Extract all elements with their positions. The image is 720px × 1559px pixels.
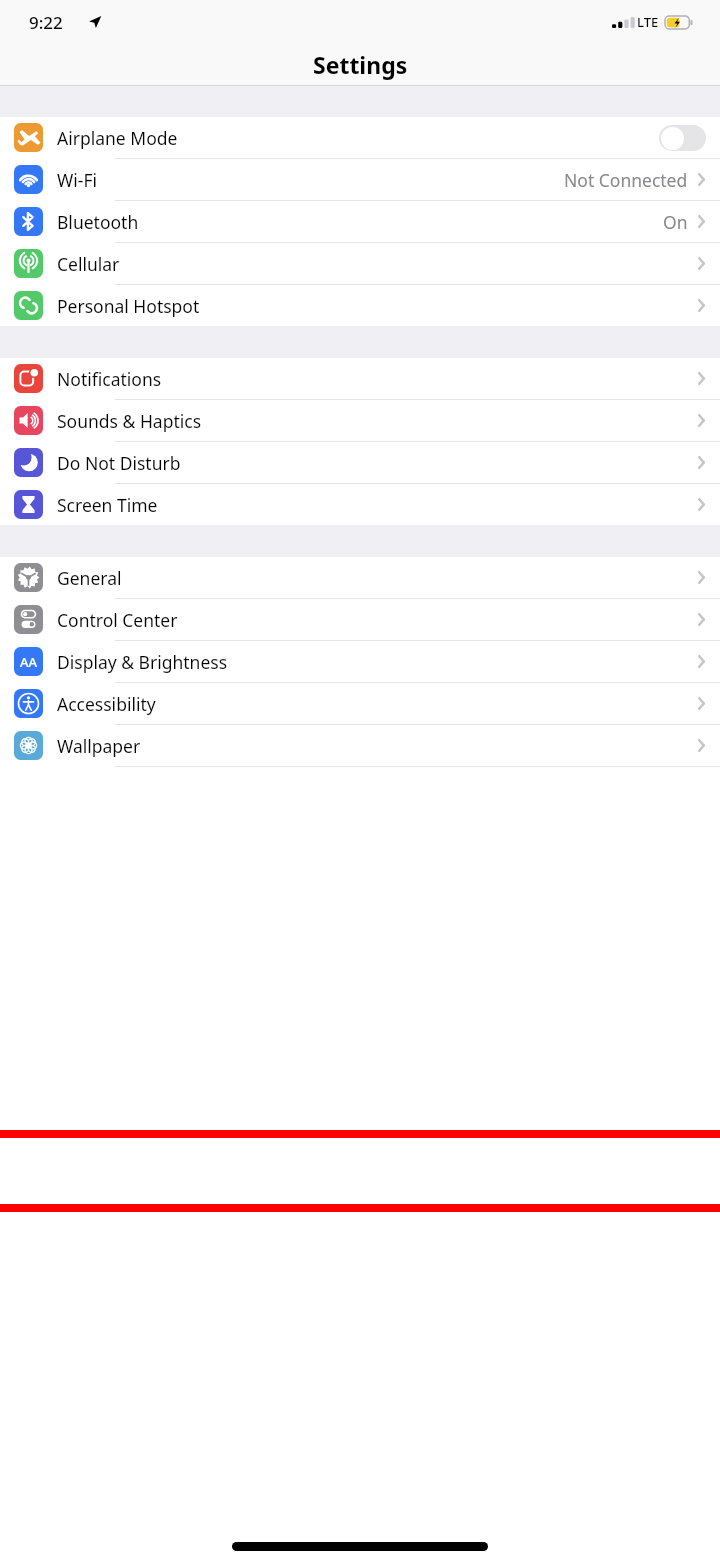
button[interactable]: Notifications xyxy=(0,358,720,399)
staticText: Settings xyxy=(313,49,408,80)
button[interactable]: Sounds & Haptics xyxy=(0,400,720,441)
button[interactable]: Control Center xyxy=(0,599,720,640)
button[interactable]: Wi-Fi xyxy=(0,159,720,200)
staticText: Sounds & Haptics xyxy=(57,409,202,433)
staticText: General xyxy=(57,566,122,590)
button[interactable]: Bluetooth xyxy=(0,201,720,242)
staticText: Cellular xyxy=(57,252,120,276)
button[interactable]: AA xyxy=(0,641,720,682)
staticText: Display & Brightness xyxy=(57,650,228,674)
staticText: Accessibility xyxy=(57,692,156,716)
staticText: On xyxy=(663,210,688,234)
button[interactable]: Screen Time xyxy=(0,484,720,525)
staticText: Notifications xyxy=(57,367,162,391)
staticText: Wallpaper xyxy=(57,734,141,758)
button[interactable]: Do Not Disturb xyxy=(0,442,720,483)
staticText: Airplane Mode xyxy=(57,126,178,150)
button[interactable]: Cellular xyxy=(0,243,720,284)
staticText: LTE xyxy=(637,13,659,31)
staticText: Personal Hotspot xyxy=(57,294,200,318)
staticText: Control Center xyxy=(57,608,178,632)
button[interactable]: Wallpaper xyxy=(0,725,720,766)
staticText: Do Not Disturb xyxy=(57,451,181,475)
button[interactable]: Airplane Mode toggle xyxy=(659,125,706,151)
staticText: Screen Time xyxy=(57,493,158,517)
button[interactable]: Accessibility xyxy=(0,683,720,724)
button[interactable]: Airplane Mode xyxy=(0,117,720,158)
staticText: 9:22 xyxy=(29,11,63,34)
staticText: Wi-Fi xyxy=(57,168,98,192)
staticText: Not Connected xyxy=(564,168,688,192)
staticText: Bluetooth xyxy=(57,210,139,234)
button[interactable]: Personal Hotspot xyxy=(0,285,720,326)
staticText: AA xyxy=(20,653,38,671)
button[interactable]: General xyxy=(0,557,720,598)
